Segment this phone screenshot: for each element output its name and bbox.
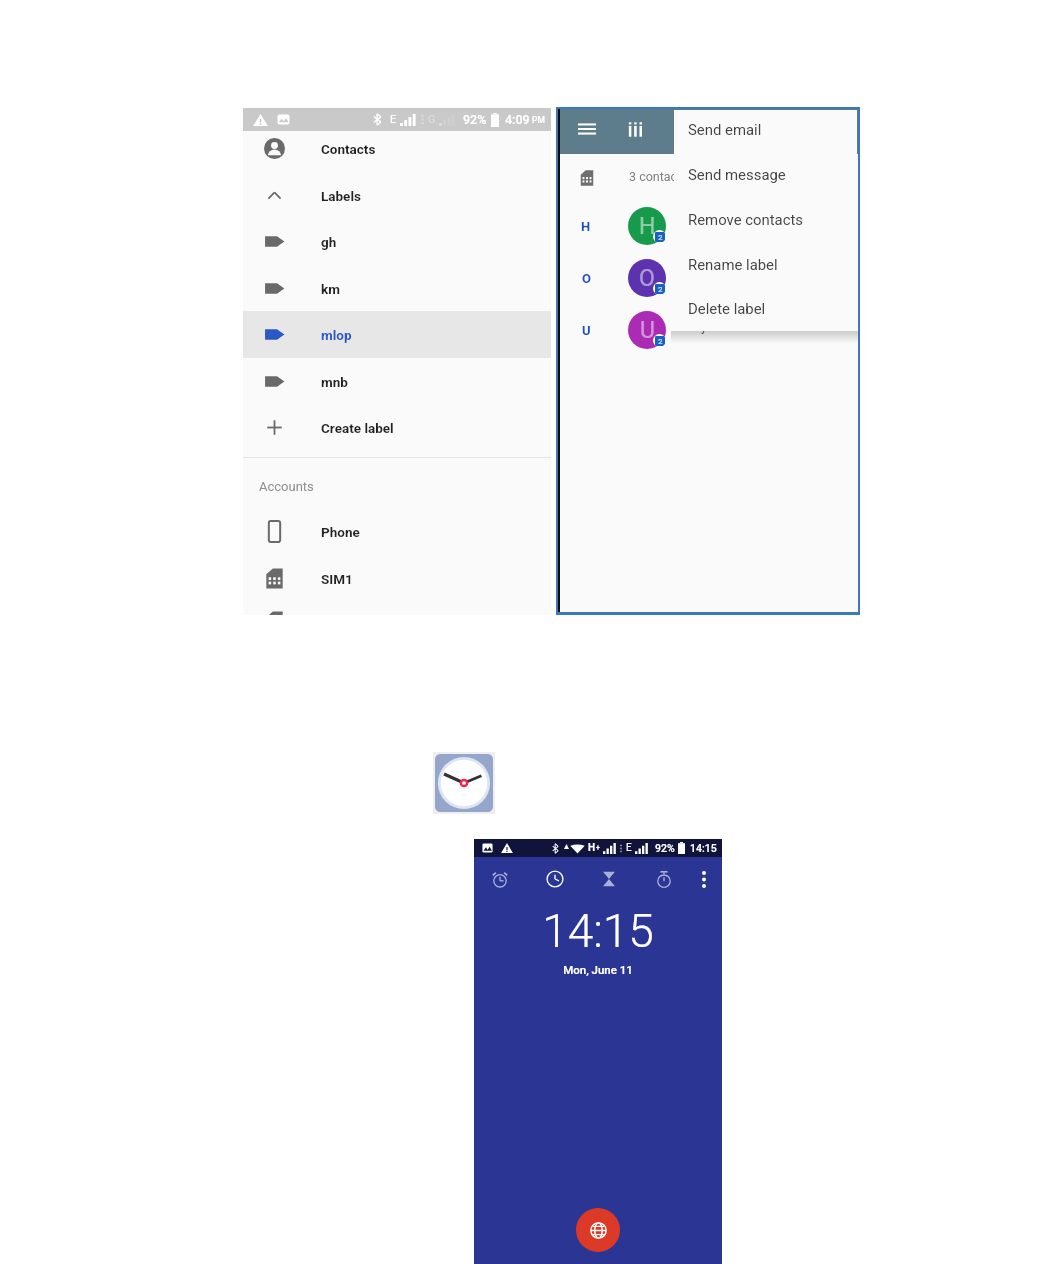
staticText: Send email — [688, 121, 762, 138]
button[interactable]: mnb — [243, 358, 551, 405]
staticText: E — [626, 842, 632, 854]
staticText: Delete label — [688, 300, 766, 317]
staticText: E — [390, 113, 397, 126]
staticText: Create label — [321, 420, 394, 436]
staticText: Hema — [680, 216, 712, 230]
staticText: Send message — [688, 166, 786, 183]
staticText: mnb — [321, 374, 348, 390]
staticText: Phone — [321, 524, 360, 540]
staticText: Uday — [680, 320, 707, 334]
staticText: 3 contacts — [629, 169, 688, 184]
staticText: + — [596, 844, 600, 852]
button[interactable]: Send email — [674, 109, 857, 152]
button[interactable]: Labels — [243, 172, 551, 219]
button[interactable]: SIM1 — [243, 555, 551, 602]
staticText: H — [581, 219, 591, 234]
staticText: H — [639, 213, 656, 240]
staticText: gh — [321, 234, 337, 250]
staticText: 14:15 — [474, 904, 722, 958]
staticText: O — [639, 265, 655, 292]
button[interactable]: World clock — [576, 1208, 620, 1252]
button[interactable]: km — [243, 265, 551, 312]
button[interactable]: O — [558, 252, 858, 304]
staticText: 92% — [463, 112, 487, 127]
button[interactable]: Send message — [674, 152, 857, 197]
button[interactable]: Clock — [534, 858, 576, 900]
staticText: Accounts — [259, 479, 314, 494]
staticText: Mon, June 11 — [474, 963, 722, 976]
button[interactable]: Contacts — [243, 125, 551, 172]
staticText: 14:15 — [690, 842, 717, 854]
staticText: PM — [532, 115, 545, 125]
button[interactable]: Stopwatch — [643, 858, 685, 900]
staticText: 4:09 — [505, 112, 530, 127]
staticText: 2 — [658, 233, 663, 242]
staticText: SIM1 — [321, 571, 353, 587]
button[interactable]: Open navigation drawer — [575, 117, 599, 141]
staticText: G — [428, 113, 436, 126]
button[interactable] — [243, 598, 551, 615]
button[interactable]: Create label — [243, 404, 551, 451]
staticText: Om — [680, 268, 699, 282]
button[interactable]: Switch view — [623, 117, 647, 141]
button[interactable]: U — [558, 304, 858, 356]
button[interactable]: Phone — [243, 508, 551, 555]
button[interactable]: Rename label — [674, 242, 857, 287]
button[interactable]: Alarm — [479, 858, 521, 900]
staticText: 2 — [658, 285, 663, 294]
button[interactable]: Timer — [588, 858, 630, 900]
button[interactable]: Remove contacts — [674, 197, 857, 242]
staticText: H — [588, 842, 596, 854]
staticText: U — [582, 323, 591, 338]
staticText: Rename label — [688, 256, 778, 273]
button[interactable]: H — [558, 200, 858, 252]
button[interactable]: gh — [243, 218, 551, 265]
staticText: Labels — [321, 188, 361, 204]
staticText: Contacts — [321, 141, 376, 157]
staticText: 92% — [655, 842, 675, 854]
button[interactable]: Delete label — [674, 286, 857, 331]
staticText: km — [321, 281, 340, 297]
button[interactable]: More options — [691, 866, 717, 892]
staticText: mlop — [321, 327, 352, 343]
staticText: U — [640, 317, 655, 344]
staticText: Remove contacts — [688, 211, 804, 228]
staticText: O — [582, 271, 591, 286]
staticText: 2 — [658, 337, 663, 346]
button[interactable]: mlop — [243, 311, 551, 358]
